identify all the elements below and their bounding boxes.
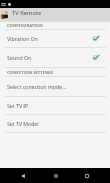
button[interactable]: Set TV Model: [0, 115, 110, 132]
staticText: Set TV IP: [7, 102, 29, 109]
button[interactable]: Vibration On: [0, 30, 110, 47]
button[interactable]: Recent apps: [79, 168, 95, 183]
staticText: TV Remote: [12, 9, 42, 17]
staticText: Set TV Model: [7, 120, 39, 127]
button[interactable]: Back: [15, 168, 31, 183]
staticText: CONECTION SETTINGS: [7, 70, 54, 76]
button[interactable]: Set TV IP: [0, 97, 110, 114]
staticText: CONFIGURATION: [7, 23, 43, 29]
staticText: Sound On: [7, 54, 32, 61]
button[interactable]: Select conection mode...: [0, 77, 110, 96]
button[interactable]: Home: [48, 168, 64, 183]
staticText: Select conection mode...: [7, 83, 67, 90]
button[interactable]: Sound On: [0, 48, 110, 67]
staticText: Vibration On: [7, 35, 38, 42]
